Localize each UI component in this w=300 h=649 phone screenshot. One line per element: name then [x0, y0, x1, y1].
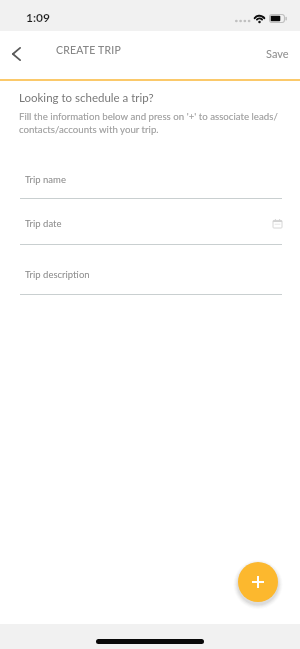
button[interactable]: Pick date — [267, 213, 287, 233]
staticText: 1:09 — [26, 10, 50, 24]
staticText: Trip description — [25, 269, 90, 280]
staticText: Fill the information below and press on … — [19, 110, 278, 135]
staticText: CREATE TRIP — [56, 44, 121, 57]
staticText: Trip name — [25, 174, 66, 185]
button[interactable]: Add — [238, 562, 278, 602]
button[interactable]: Back — [4, 42, 28, 66]
staticText: Save — [266, 47, 289, 60]
button[interactable]: Save — [250, 39, 300, 68]
staticText: Trip date — [25, 218, 62, 229]
staticText: Looking to schedule a trip? — [19, 91, 154, 105]
